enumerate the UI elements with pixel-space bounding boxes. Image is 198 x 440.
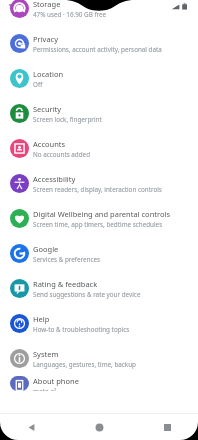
staticText: Languages, gestures, time, backup [33, 360, 136, 369]
staticText: Permissions, account activity, personal … [33, 45, 162, 54]
staticText: moto e⁷ [33, 387, 57, 391]
staticText: Screen readers, display, interaction con… [33, 185, 162, 194]
button[interactable]: Home [86, 414, 112, 440]
staticText: Help [33, 314, 50, 324]
staticText: Rating & feedback [33, 279, 98, 289]
staticText: Accounts [33, 139, 66, 149]
button[interactable]: Recent apps [154, 414, 180, 440]
button[interactable]: Help [0, 306, 198, 341]
staticText: 47% used · 16.90 GB free [33, 10, 107, 19]
button[interactable]: Location [0, 61, 198, 96]
staticText: Security [33, 104, 62, 114]
staticText: About phone [33, 376, 79, 386]
staticText: Screen lock, fingerprint [33, 115, 102, 124]
button[interactable]: Digital Wellbeing and parental controls [0, 201, 198, 236]
staticText: Screen time, app timers, bedtime schedul… [33, 220, 163, 229]
button[interactable]: Back [18, 414, 44, 440]
button[interactable]: Privacy [0, 26, 198, 61]
staticText: Digital Wellbeing and parental controls [33, 209, 170, 219]
button[interactable]: About phone [0, 376, 198, 391]
button[interactable]: Security [0, 96, 198, 131]
button[interactable]: Accounts [0, 131, 198, 166]
staticText: Accessibility [33, 174, 76, 184]
button[interactable]: System [0, 341, 198, 376]
staticText: Services & preferences [33, 255, 101, 264]
button[interactable]: Accessibility [0, 166, 198, 201]
staticText: Storage [33, 0, 61, 9]
staticText: How-to & troubleshooting topics [33, 325, 130, 334]
button[interactable]: Rating & feedback [0, 271, 198, 306]
button[interactable]: Storage [0, 0, 198, 26]
staticText: No accounts added [33, 150, 91, 159]
staticText: Google [33, 244, 59, 254]
staticText: System [33, 349, 59, 359]
staticText: Location [33, 69, 64, 79]
staticText: Off [33, 80, 43, 89]
staticText: 10:00 [8, 2, 26, 12]
staticText: Send suggestions & rate your device [33, 290, 141, 299]
staticText: Privacy [33, 34, 59, 44]
button[interactable]: Google [0, 236, 198, 271]
